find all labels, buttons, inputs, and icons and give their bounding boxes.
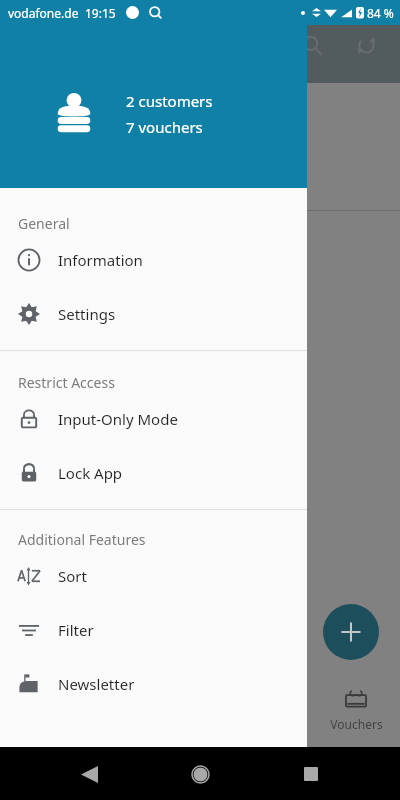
staticText: 84 % xyxy=(367,5,394,21)
button[interactable]: Search xyxy=(292,25,332,65)
button[interactable]: Sort xyxy=(0,549,307,603)
button[interactable]: Input-Only Mode xyxy=(0,392,307,446)
button[interactable]: Vouchers xyxy=(312,688,400,732)
button[interactable]: Back xyxy=(67,752,111,796)
staticText: Sort xyxy=(58,566,87,586)
staticText: Information xyxy=(58,250,143,270)
staticText: Settings xyxy=(58,304,116,324)
staticText: Input-Only Mode xyxy=(58,409,178,429)
staticText: General xyxy=(18,214,70,233)
button[interactable]: Filter xyxy=(0,603,307,657)
button[interactable]: Lock App xyxy=(0,446,307,500)
staticText: Lock App xyxy=(58,463,123,483)
button[interactable]: Add xyxy=(323,604,379,660)
button[interactable]: Settings xyxy=(0,287,307,341)
staticText: Restrict Access xyxy=(18,373,115,392)
button[interactable]: Home xyxy=(178,752,222,796)
staticText: 19:15 xyxy=(85,5,116,21)
staticText: Newsletter xyxy=(58,674,135,694)
button[interactable]: Refresh xyxy=(346,25,386,65)
staticText: 2 customers xyxy=(126,91,213,111)
button[interactable]: Information xyxy=(0,233,307,287)
staticText: vodafone.de xyxy=(8,5,79,21)
staticText: Filter xyxy=(58,620,94,640)
staticText: 7 vouchers xyxy=(126,117,203,137)
staticText: Additional Features xyxy=(18,530,146,549)
button[interactable]: Recent apps xyxy=(289,752,333,796)
staticText: Vouchers xyxy=(330,716,383,732)
button[interactable]: Newsletter xyxy=(0,657,307,711)
